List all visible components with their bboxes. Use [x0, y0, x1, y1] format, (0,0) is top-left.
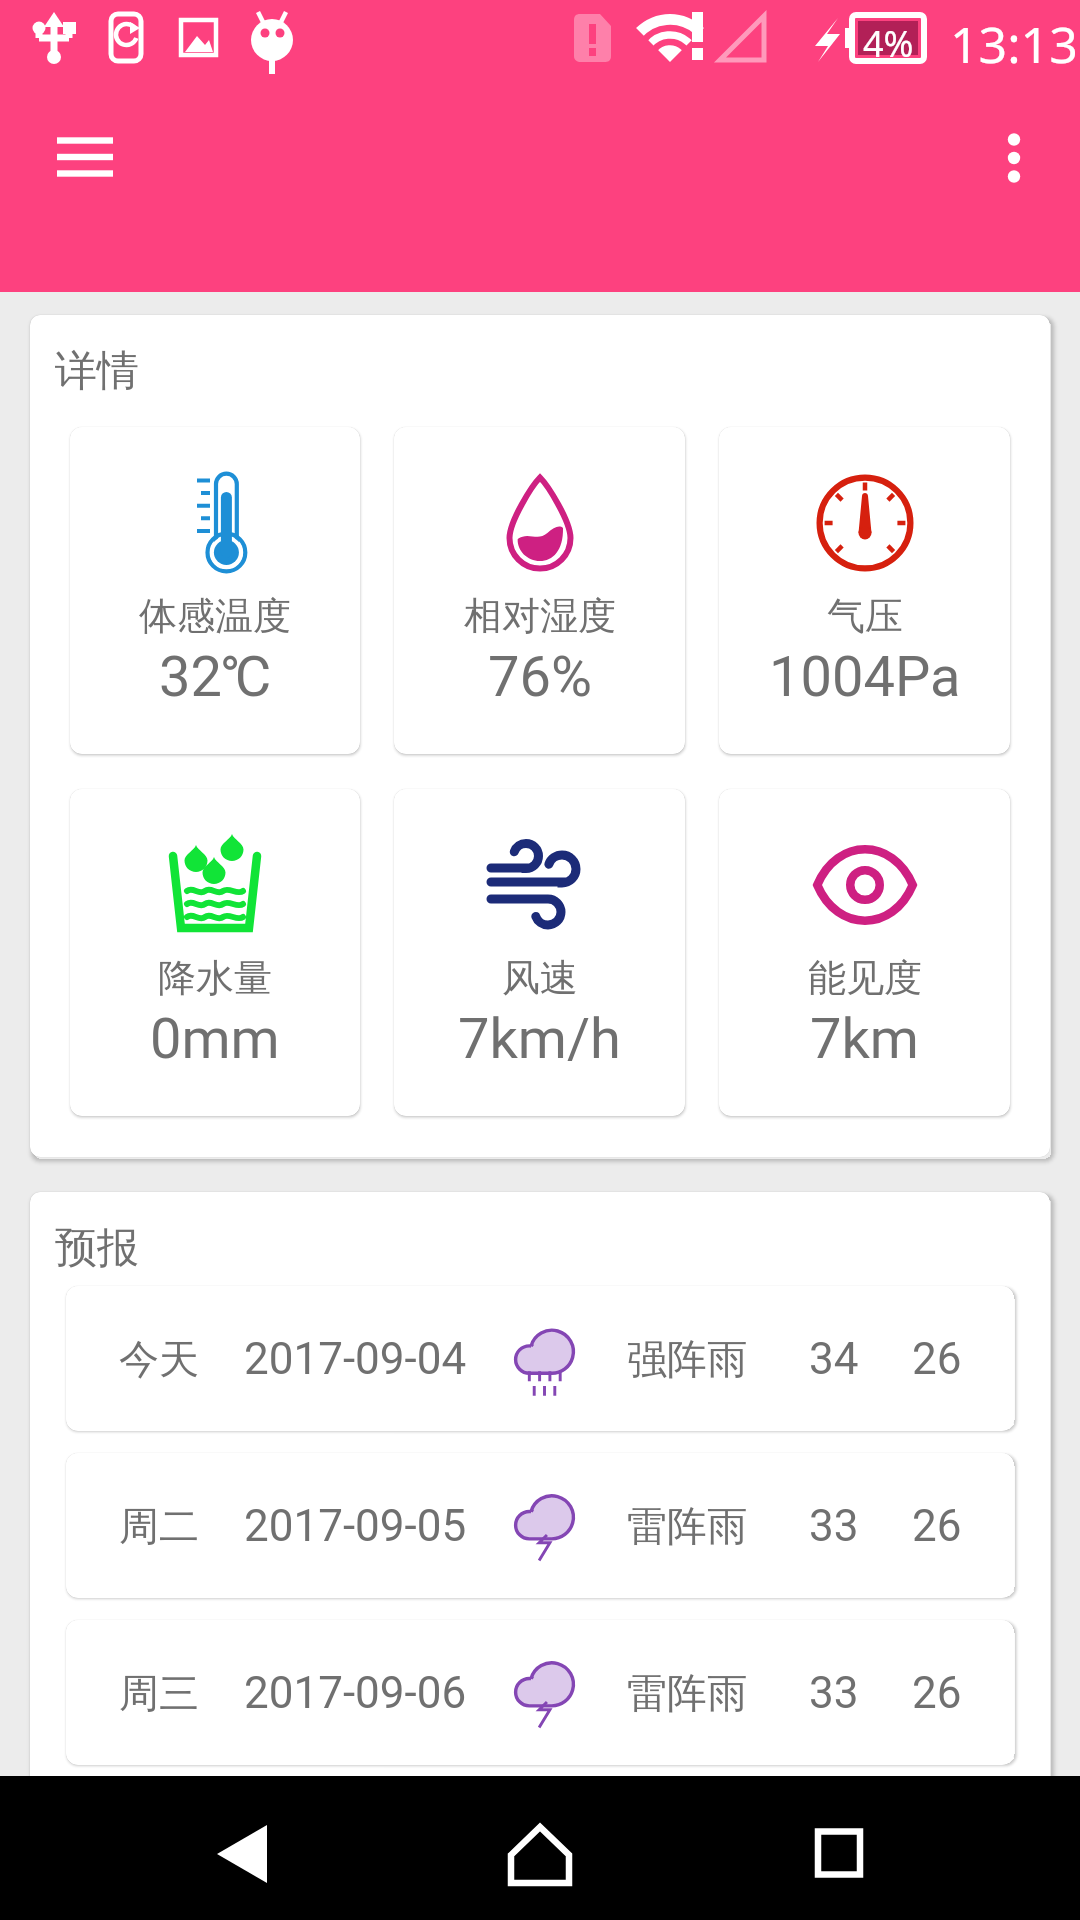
button[interactable]: 相对湿度	[394, 427, 685, 754]
button[interactable]: 降水量	[70, 789, 360, 1116]
staticText: 76%	[488, 644, 592, 710]
staticText: 雷阵雨	[627, 1668, 747, 1718]
button[interactable]: More options	[964, 108, 1064, 208]
staticText: 26	[912, 1500, 962, 1552]
staticText: 相对湿度	[464, 592, 616, 640]
staticText: 周三	[119, 1668, 199, 1718]
staticText: 33	[809, 1667, 859, 1719]
staticText: 32℃	[159, 644, 272, 710]
staticText: 风速	[502, 954, 578, 1002]
staticText: 33	[809, 1500, 859, 1552]
staticText: 降水量	[158, 954, 272, 1002]
staticText: 34	[809, 1333, 859, 1385]
button[interactable]: 能见度	[719, 789, 1010, 1116]
button[interactable]: Recents	[774, 1788, 904, 1918]
staticText: 2017-09-05	[244, 1500, 467, 1552]
staticText: 7km	[810, 1006, 919, 1072]
staticText: 0mm	[150, 1006, 280, 1072]
button[interactable]: 体感温度	[70, 427, 360, 754]
staticText: 4%	[863, 19, 914, 68]
button[interactable]: 风速	[394, 789, 685, 1116]
button[interactable]: 今天	[66, 1286, 1014, 1431]
staticText: 2017-09-06	[244, 1667, 467, 1719]
button[interactable]: Menu	[30, 102, 140, 212]
button[interactable]: 气压	[719, 427, 1010, 754]
staticText: 13:13	[950, 10, 1078, 78]
button[interactable]: 周二	[66, 1453, 1014, 1598]
staticText: 预报	[55, 1222, 139, 1275]
staticText: 26	[912, 1333, 962, 1385]
staticText: 能见度	[808, 954, 922, 1002]
button[interactable]: 周三	[66, 1620, 1014, 1765]
staticText: 周二	[119, 1501, 199, 1551]
staticText: 详情	[55, 345, 139, 398]
staticText: 7km/h	[458, 1006, 621, 1072]
staticText: 强阵雨	[627, 1334, 747, 1384]
staticText: 2017-09-04	[244, 1333, 467, 1385]
staticText: 26	[912, 1667, 962, 1719]
button[interactable]: Back	[177, 1789, 307, 1919]
staticText: 体感温度	[139, 592, 291, 640]
staticText: 雷阵雨	[627, 1501, 747, 1551]
staticText: 气压	[827, 592, 903, 640]
staticText: 1004Pa	[769, 644, 961, 710]
button[interactable]: Home	[475, 1791, 605, 1920]
staticText: 今天	[119, 1334, 199, 1384]
